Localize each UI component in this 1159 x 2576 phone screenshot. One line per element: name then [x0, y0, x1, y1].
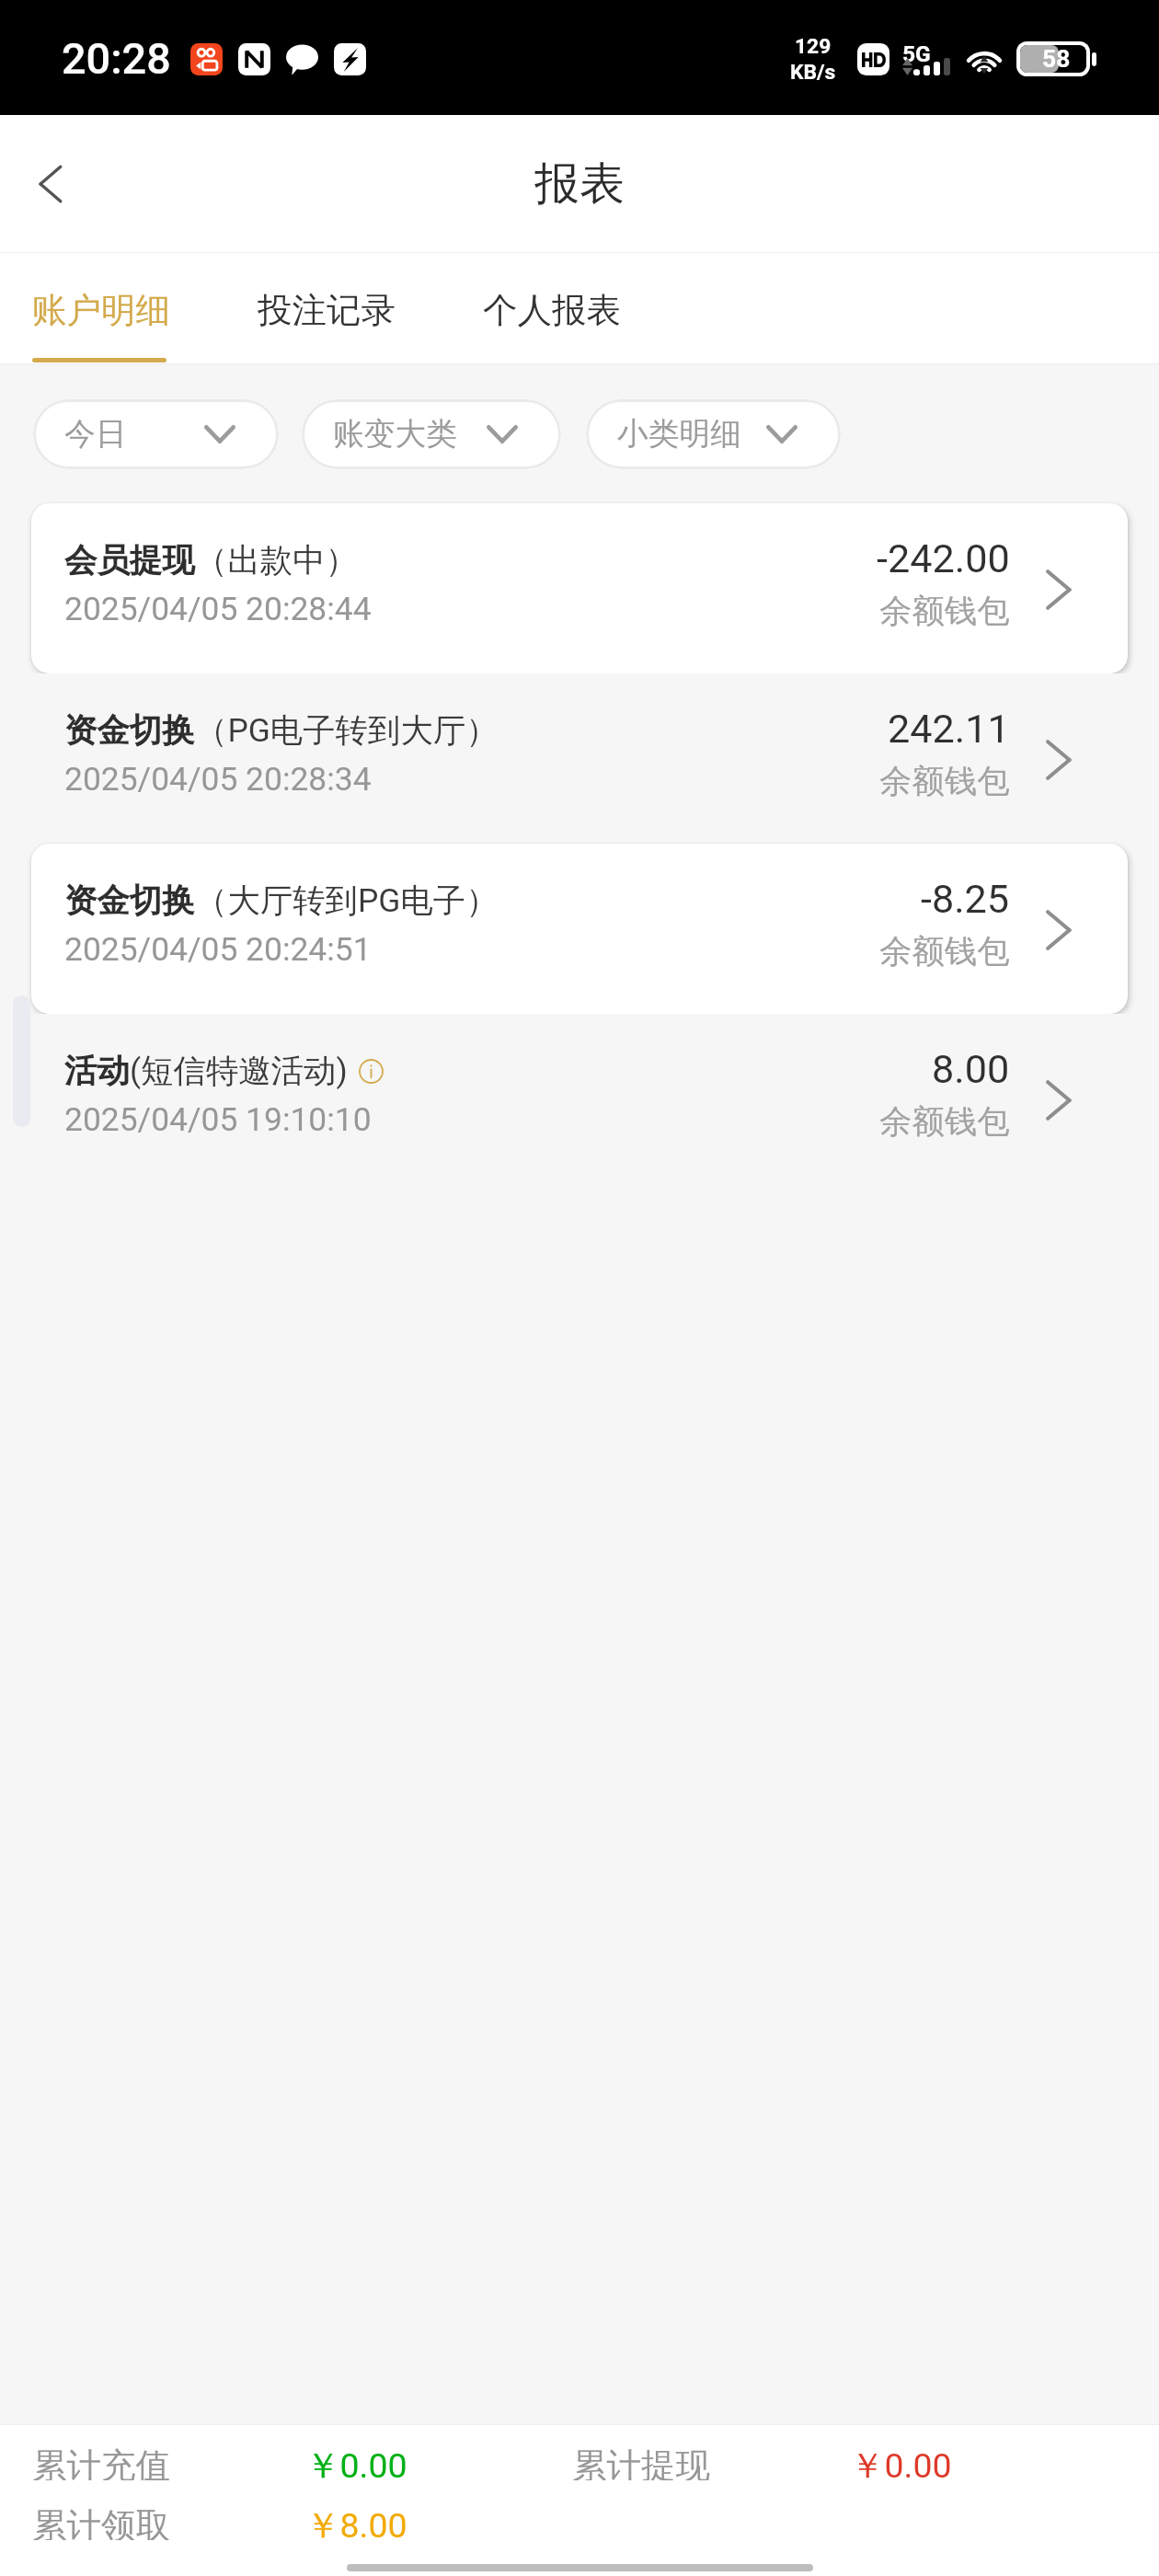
button[interactable]: 账变大类: [302, 399, 561, 469]
staticText: 20:28: [62, 34, 171, 85]
button[interactable]: 资金切换: [0, 673, 1159, 844]
staticText: 今日: [64, 415, 127, 454]
button[interactable]: 投注记录: [258, 253, 396, 364]
staticText: 2025/04/05 19:10:10: [64, 1100, 372, 1138]
staticText: 余额钱包: [879, 1101, 1010, 1143]
staticText: 会员提现: [64, 540, 195, 581]
staticText: 资金切换: [64, 710, 195, 752]
staticText: 余额钱包: [879, 931, 1010, 972]
staticText: ￥0.00: [305, 2444, 407, 2480]
staticText: 账户明细: [32, 289, 170, 332]
button[interactable]: 活动: [0, 1014, 1159, 1184]
staticText: 小类明细: [617, 415, 741, 454]
staticText: 2025/04/05 20:24:51: [64, 930, 372, 968]
staticText: -8.25: [921, 876, 1010, 923]
staticText: 资金切换: [64, 880, 195, 922]
staticText: (短信特邀活动): [130, 1051, 348, 1092]
staticText: 投注记录: [258, 289, 396, 332]
button[interactable]: 个人报表: [483, 253, 621, 364]
staticText: 累计充值: [32, 2444, 170, 2480]
staticText: 累计领取: [32, 2504, 170, 2540]
staticText: （大厅转到PG电子）: [195, 880, 499, 922]
button[interactable]: 账户明细: [32, 253, 170, 364]
staticText: 活动: [64, 1051, 130, 1092]
staticText: 58: [1042, 45, 1071, 73]
button[interactable]: 资金切换: [0, 844, 1159, 1014]
staticText: 5G: [902, 40, 931, 67]
staticText: 8.00: [932, 1046, 1010, 1093]
staticText: 报表: [534, 155, 625, 213]
button[interactable]: 小类明细: [586, 399, 841, 469]
staticText: -242.00: [877, 535, 1010, 582]
staticText: 2025/04/05 20:28:44: [64, 590, 372, 627]
staticText: 余额钱包: [879, 761, 1010, 802]
staticText: 129: [795, 34, 832, 59]
staticText: （PG电子转到大厅）: [195, 710, 499, 752]
staticText: （出款中）: [195, 540, 358, 581]
staticText: 个人报表: [483, 289, 621, 332]
staticText: 账变大类: [333, 415, 457, 454]
button[interactable]: 今日: [33, 399, 279, 469]
button[interactable]: Back: [8, 143, 91, 225]
staticText: 累计提现: [572, 2444, 710, 2480]
staticText: 2025/04/05 20:28:34: [64, 760, 372, 798]
staticText: ￥8.00: [305, 2504, 407, 2540]
button[interactable]: 会员提现: [0, 503, 1159, 673]
staticText: 余额钱包: [879, 591, 1010, 632]
staticText: 242.11: [888, 706, 1010, 753]
staticText: ￥0.00: [850, 2444, 952, 2480]
staticText: KB/s: [790, 60, 836, 85]
